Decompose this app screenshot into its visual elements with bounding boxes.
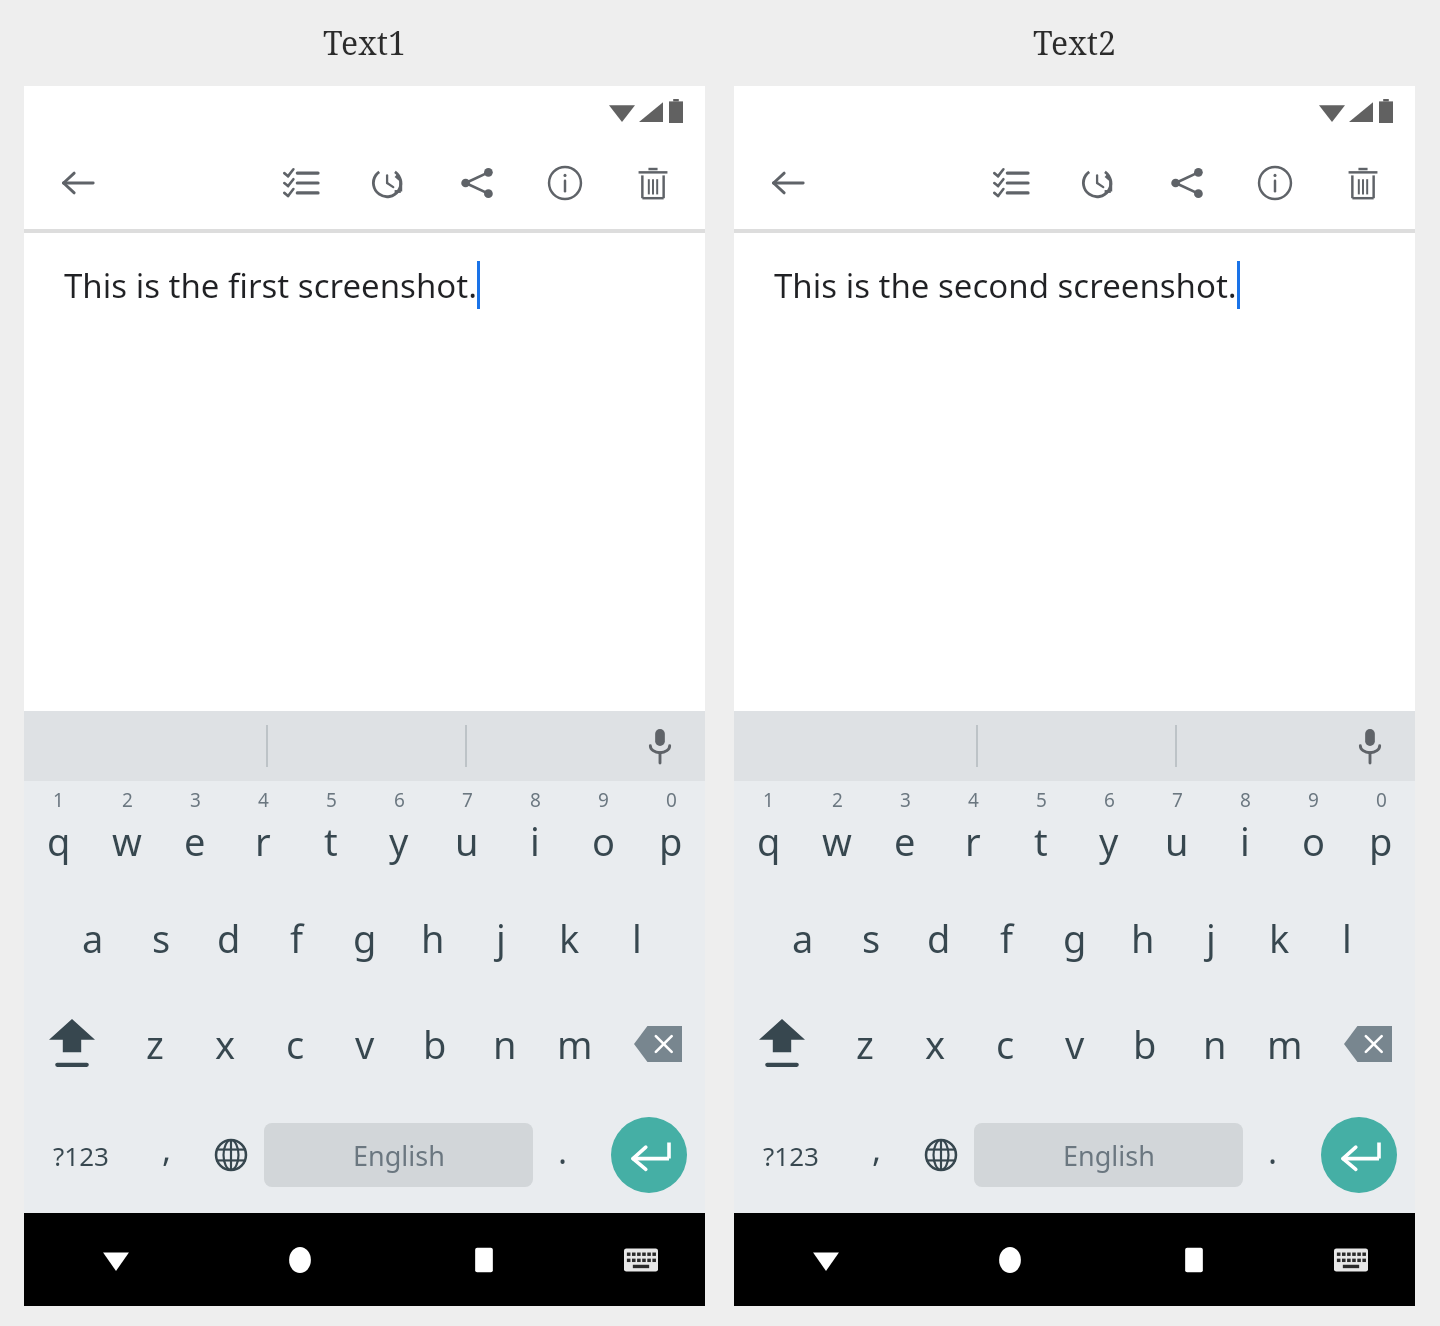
button[interactable]: n xyxy=(470,991,540,1097)
button[interactable]: Back xyxy=(762,157,814,209)
button[interactable]: Back xyxy=(734,1213,918,1306)
button[interactable]: English xyxy=(974,1123,1243,1187)
button[interactable]: j xyxy=(467,885,535,991)
button[interactable]: f xyxy=(263,885,331,991)
button[interactable]: x xyxy=(900,991,970,1097)
button[interactable]: n xyxy=(1180,991,1250,1097)
button[interactable]: . xyxy=(1243,1097,1303,1213)
button[interactable]: History xyxy=(363,157,415,209)
button[interactable]: 8 xyxy=(1211,781,1279,885)
button[interactable]: b xyxy=(400,991,470,1097)
staticText: q xyxy=(47,815,71,867)
button[interactable]: k xyxy=(535,885,603,991)
button[interactable]: f xyxy=(973,885,1041,991)
button[interactable]: z xyxy=(120,991,190,1097)
button[interactable]: g xyxy=(331,885,399,991)
button[interactable]: 4 xyxy=(939,781,1007,885)
button[interactable]: Backspace xyxy=(610,991,705,1097)
button[interactable]: 7 xyxy=(433,781,501,885)
button[interactable]: v xyxy=(330,991,400,1097)
button[interactable]: Keyboard xyxy=(576,1213,705,1306)
button[interactable]: c xyxy=(970,991,1040,1097)
button[interactable]: 6 xyxy=(1075,781,1143,885)
button[interactable]: m xyxy=(1250,991,1320,1097)
button[interactable]: 1 xyxy=(734,781,803,885)
button[interactable]: s xyxy=(837,885,905,991)
button[interactable]: Delete xyxy=(627,157,679,209)
button[interactable]: Change language xyxy=(907,1097,974,1213)
button[interactable]: Back xyxy=(52,157,104,209)
button[interactable]: Back xyxy=(24,1213,208,1306)
button[interactable]: History xyxy=(1073,157,1125,209)
button[interactable]: Checklist xyxy=(275,157,327,209)
button[interactable]: Delete xyxy=(1337,157,1389,209)
button[interactable]: Recents xyxy=(392,1213,576,1306)
button[interactable]: Shift xyxy=(734,991,830,1097)
button[interactable]: Change language xyxy=(197,1097,264,1213)
button[interactable]: Voice input xyxy=(1347,723,1393,769)
button[interactable]: Recents xyxy=(1102,1213,1286,1306)
button[interactable]: , xyxy=(847,1097,907,1213)
button[interactable]: v xyxy=(1040,991,1110,1097)
button[interactable]: 5 xyxy=(297,781,365,885)
staticText: h xyxy=(1131,912,1155,964)
button[interactable]: j xyxy=(1177,885,1245,991)
button[interactable]: ?123 xyxy=(24,1097,137,1213)
button[interactable]: 1 xyxy=(24,781,93,885)
button[interactable]: 7 xyxy=(1143,781,1211,885)
button[interactable]: Backspace xyxy=(1320,991,1415,1097)
button[interactable]: Keyboard xyxy=(1286,1213,1415,1306)
button[interactable]: g xyxy=(1041,885,1109,991)
button[interactable]: 2 xyxy=(93,781,161,885)
button[interactable]: s xyxy=(127,885,195,991)
button[interactable]: 9 xyxy=(1279,781,1347,885)
button[interactable]: 0 xyxy=(637,781,705,885)
button[interactable]: z xyxy=(830,991,900,1097)
staticText: i xyxy=(530,815,540,867)
button[interactable]: l xyxy=(603,885,671,991)
button[interactable]: . xyxy=(533,1097,593,1213)
button[interactable]: Info xyxy=(539,157,591,209)
button[interactable]: 6 xyxy=(365,781,433,885)
button[interactable]: k xyxy=(1245,885,1313,991)
button[interactable]: , xyxy=(137,1097,197,1213)
staticText: English xyxy=(353,1137,445,1174)
button[interactable]: Enter xyxy=(593,1097,705,1213)
button[interactable]: Home xyxy=(918,1213,1102,1306)
button[interactable]: 5 xyxy=(1007,781,1075,885)
button[interactable]: ?123 xyxy=(734,1097,847,1213)
button[interactable]: Checklist xyxy=(985,157,1037,209)
button[interactable]: a xyxy=(58,885,127,991)
button[interactable]: 8 xyxy=(501,781,569,885)
button[interactable]: 2 xyxy=(803,781,871,885)
button[interactable]: Shift xyxy=(24,991,120,1097)
button[interactable]: 3 xyxy=(161,781,229,885)
staticText: 1 xyxy=(53,787,64,813)
button[interactable]: d xyxy=(195,885,263,991)
button[interactable]: h xyxy=(399,885,467,991)
staticText: b xyxy=(1133,1018,1157,1070)
button[interactable]: Share xyxy=(1161,157,1213,209)
button[interactable]: Share xyxy=(451,157,503,209)
staticText: 1 xyxy=(763,787,774,813)
button[interactable]: 4 xyxy=(229,781,297,885)
button[interactable]: d xyxy=(905,885,973,991)
button[interactable]: Home xyxy=(208,1213,392,1306)
button[interactable]: 9 xyxy=(569,781,637,885)
button[interactable]: English xyxy=(264,1123,533,1187)
button[interactable]: 3 xyxy=(871,781,939,885)
button[interactable]: Enter xyxy=(1303,1097,1415,1213)
button[interactable]: c xyxy=(260,991,330,1097)
staticText: a xyxy=(82,912,104,964)
button[interactable]: x xyxy=(190,991,260,1097)
button[interactable]: h xyxy=(1109,885,1177,991)
button[interactable]: m xyxy=(540,991,610,1097)
button[interactable]: b xyxy=(1110,991,1180,1097)
button[interactable]: l xyxy=(1313,885,1381,991)
button[interactable]: Voice input xyxy=(637,723,683,769)
staticText: y xyxy=(389,815,409,867)
button[interactable]: Info xyxy=(1249,157,1301,209)
button[interactable]: a xyxy=(768,885,837,991)
button[interactable]: 0 xyxy=(1347,781,1415,885)
staticText: 2 xyxy=(832,787,843,813)
